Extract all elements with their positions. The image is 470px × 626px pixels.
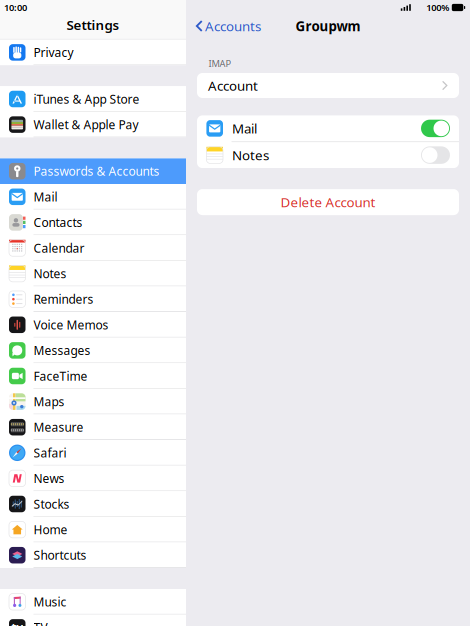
staticText: Notes bbox=[33, 266, 66, 281]
button[interactable]: Music bbox=[0, 589, 186, 615]
button[interactable]: Safari bbox=[0, 440, 186, 466]
staticText: Measure bbox=[33, 419, 83, 435]
staticText: Home bbox=[33, 522, 67, 537]
button[interactable]: tv bbox=[0, 615, 186, 626]
staticText: Stocks bbox=[33, 496, 69, 512]
staticText: FaceTime bbox=[33, 368, 87, 384]
staticText: Voice Memos bbox=[33, 317, 108, 333]
button[interactable]: Notes bbox=[197, 142, 459, 168]
staticText: Passwords & Accounts bbox=[33, 163, 159, 179]
button[interactable]: Home bbox=[0, 517, 186, 542]
button[interactable]: Mail bbox=[197, 115, 459, 141]
button[interactable]: Messages bbox=[0, 338, 186, 363]
staticText: Delete Account bbox=[280, 193, 375, 211]
staticText: Shortcuts bbox=[33, 547, 86, 563]
staticText: Account bbox=[208, 77, 258, 94]
staticText: Contacts bbox=[33, 214, 82, 230]
staticText: iTunes & App Store bbox=[33, 91, 139, 107]
button[interactable]: FaceTime bbox=[0, 363, 186, 389]
button[interactable]: Delete Account bbox=[197, 189, 459, 215]
staticText: 10:00 bbox=[4, 1, 27, 14]
staticText: Calendar bbox=[33, 240, 84, 256]
staticText: Groupwm bbox=[295, 17, 360, 35]
staticText: TV bbox=[33, 619, 47, 626]
button[interactable]: Contacts bbox=[0, 210, 186, 235]
button[interactable]: Maps bbox=[0, 389, 186, 414]
staticText: Wallet & Apple Pay bbox=[33, 117, 138, 132]
button[interactable]: Account bbox=[197, 73, 459, 98]
staticText: Accounts bbox=[205, 17, 261, 35]
button[interactable]: Calendar bbox=[0, 235, 186, 261]
button[interactable]: Privacy bbox=[0, 40, 186, 65]
staticText: News bbox=[33, 470, 64, 486]
staticText: Reminders bbox=[33, 291, 93, 307]
staticText: Safari bbox=[33, 445, 66, 461]
staticText: Music bbox=[33, 594, 66, 610]
button[interactable]: Shortcuts bbox=[0, 542, 186, 568]
button[interactable]: Wallet & Apple Pay bbox=[0, 112, 186, 137]
button[interactable]: Voice Memos bbox=[0, 312, 186, 338]
staticText: Settings bbox=[66, 16, 119, 34]
button[interactable]: Reminders bbox=[0, 286, 186, 312]
staticText: Privacy bbox=[33, 44, 73, 60]
staticText: tv bbox=[11, 619, 23, 626]
staticText: Mail bbox=[33, 189, 57, 205]
staticText: IMAP bbox=[208, 57, 231, 69]
staticText: 100% bbox=[426, 1, 449, 14]
button[interactable]: Notes bbox=[0, 261, 186, 286]
button[interactable]: Passwords & Accounts bbox=[0, 158, 186, 184]
staticText: Maps bbox=[33, 394, 64, 409]
button[interactable]: News bbox=[0, 466, 186, 491]
button[interactable]: Mail bbox=[0, 184, 186, 210]
button[interactable]: Stocks bbox=[0, 491, 186, 517]
button[interactable]: Accounts bbox=[186, 14, 267, 38]
button[interactable]: iTunes & App Store bbox=[0, 86, 186, 112]
button[interactable]: Measure bbox=[0, 414, 186, 440]
staticText: Mail bbox=[232, 119, 257, 137]
staticText: Notes bbox=[232, 146, 269, 164]
staticText: Messages bbox=[33, 342, 90, 358]
